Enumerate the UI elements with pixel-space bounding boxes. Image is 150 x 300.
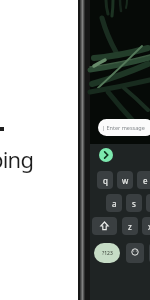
button[interactable]: ?123: [94, 243, 120, 263]
button[interactable]: q: [97, 171, 113, 189]
staticText: s: [132, 198, 136, 209]
staticText: z: [128, 221, 132, 232]
staticText: | Enter message: [102, 124, 145, 131]
button[interactable]: e: [137, 171, 150, 189]
staticText: ping: [0, 144, 34, 174]
button[interactable]: s: [126, 194, 142, 212]
button[interactable]: x: [142, 217, 150, 235]
button[interactable]: d: [146, 194, 150, 212]
button[interactable]: z: [122, 217, 138, 235]
button[interactable]: [149, 243, 150, 263]
button[interactable]: | Enter message: [98, 119, 150, 136]
staticText: ?123: [102, 250, 113, 257]
staticText: q: [103, 175, 108, 186]
button[interactable]: w: [117, 171, 133, 189]
button[interactable]: a: [106, 194, 122, 212]
button[interactable]: [99, 148, 113, 162]
staticText: w: [122, 175, 129, 186]
button[interactable]: [126, 243, 144, 263]
button[interactable]: [92, 217, 117, 235]
staticText: x: [148, 221, 150, 232]
staticText: e: [143, 175, 148, 186]
staticText: a: [112, 198, 117, 209]
